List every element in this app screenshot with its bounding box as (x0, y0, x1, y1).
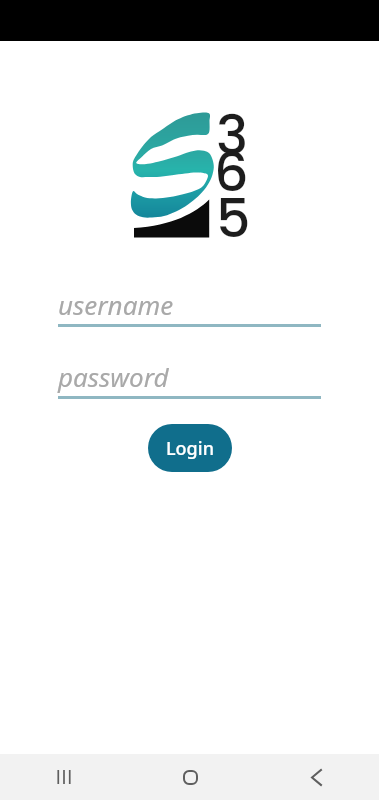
staticText: username (58, 287, 174, 322)
staticText: password (58, 359, 169, 394)
button[interactable]: Back (296, 757, 336, 797)
button[interactable]: Recent apps (44, 757, 84, 797)
staticText: 3 (216, 97, 249, 173)
staticText: Login (166, 436, 214, 461)
button[interactable]: Home (170, 757, 210, 797)
staticText: 6 (214, 134, 249, 210)
button[interactable]: Login (148, 424, 232, 472)
staticText: 5 (216, 180, 251, 256)
